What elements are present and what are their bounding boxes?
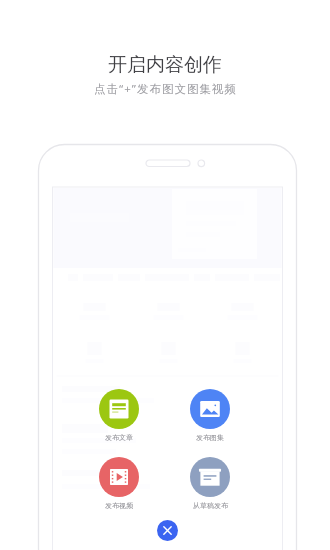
button[interactable]: 关闭	[157, 520, 178, 541]
staticText: 从草稿发布	[193, 501, 228, 510]
staticText: 发布视频	[105, 501, 133, 510]
staticText: 发布图集	[196, 433, 224, 442]
staticText: 发布文章	[105, 433, 133, 442]
button[interactable]: 发布图集	[180, 389, 240, 442]
staticText: 开启内容创作	[108, 53, 222, 77]
button[interactable]: 发布文章	[89, 389, 149, 442]
button[interactable]: 从草稿发布	[180, 457, 240, 510]
staticText: 点击“+”发布图文图集视频	[94, 81, 237, 97]
button[interactable]: 发布视频	[89, 457, 149, 510]
